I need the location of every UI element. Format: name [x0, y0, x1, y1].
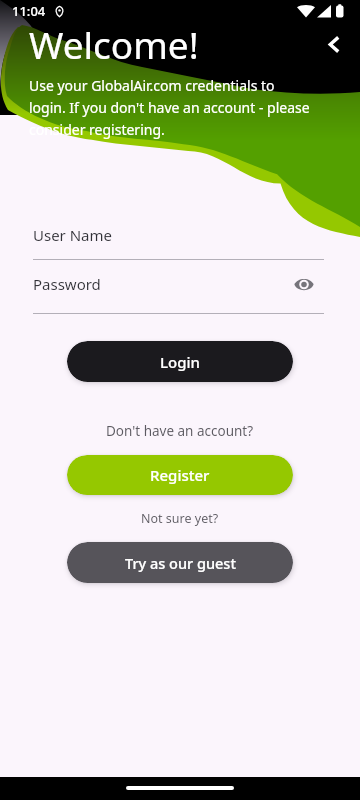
button[interactable]: Register [67, 455, 293, 495]
staticText: Try as our guest [125, 553, 236, 573]
staticText: Register [150, 465, 210, 485]
staticText: Don't have an account? [106, 422, 254, 440]
button[interactable]: Back [318, 28, 350, 60]
button[interactable]: Login [67, 341, 293, 382]
button[interactable]: Try as our guest [67, 542, 293, 583]
staticText: Use your GlobalAir.com credentials to lo… [29, 76, 310, 139]
staticText: 11:04 [12, 2, 46, 20]
staticText: Welcome! [29, 19, 199, 69]
staticText: Login [160, 352, 200, 372]
staticText: User Name [33, 225, 113, 245]
staticText: Not sure yet? [141, 510, 219, 527]
staticText: Password [33, 274, 101, 294]
button[interactable]: Show password [289, 269, 319, 299]
